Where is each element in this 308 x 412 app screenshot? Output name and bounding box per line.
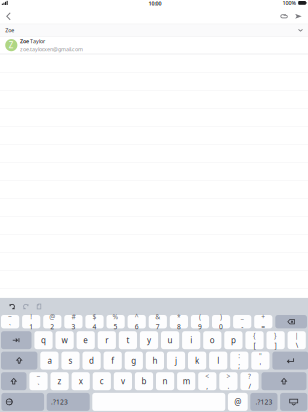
button[interactable]: ~ [29,372,48,390]
staticText: ] [275,341,277,350]
button[interactable]: + [254,315,272,328]
button[interactable]: h [146,352,164,370]
button[interactable]: z [50,372,69,390]
button[interactable]: e [77,331,95,349]
button[interactable]: % [106,315,125,328]
staticText: ` [37,382,39,391]
button[interactable]: Delete [275,315,307,328]
button[interactable]: @ [43,315,61,328]
button[interactable]: : [230,352,248,370]
button[interactable]: Undo [5,303,19,309]
staticText: > [226,372,230,381]
staticText: " [259,351,262,360]
button[interactable]: f [104,352,122,370]
button[interactable]: Hide keyboard [280,393,307,411]
button[interactable]: ? [240,372,259,390]
button[interactable]: Redo [19,303,33,309]
staticText: ^ [135,312,139,321]
button[interactable]: o [203,331,221,349]
button[interactable]: Return [272,352,308,370]
button[interactable]: ^ [128,315,146,328]
button[interactable]: Show recipient fields [293,25,308,36]
button[interactable]: Numbers [47,393,90,411]
staticText: < [205,372,209,381]
button[interactable]: " [251,352,269,370]
button[interactable]: y [140,331,158,349]
button[interactable]: > [219,372,237,390]
staticText: @ [234,397,241,407]
button[interactable]: Z [0,37,308,54]
button[interactable]: Numbers [250,393,277,411]
button[interactable]: v [114,372,132,390]
button[interactable]: s [61,352,80,370]
staticText: ; [238,361,240,370]
staticText: $ [92,312,96,321]
staticText: Zoe [20,38,29,45]
button[interactable]: $ [85,315,104,328]
staticText: , [206,382,208,391]
button[interactable]: j [167,352,185,370]
staticText: r [105,335,108,345]
button[interactable]: Back [0,9,17,23]
staticText: f [111,355,114,366]
staticText: 1 [29,322,33,331]
button[interactable]: # [64,315,82,328]
button[interactable]: g [125,352,143,370]
staticText: g [131,355,136,366]
button[interactable]: _ [233,315,251,328]
staticText: 5 [114,322,118,331]
button[interactable]: ~ [1,315,19,328]
staticText: 9 [198,322,202,331]
staticText: e [83,335,88,345]
staticText: t [126,335,129,345]
button[interactable]: < [198,372,216,390]
button[interactable]: n [156,372,174,390]
button[interactable]: d [82,352,101,370]
button[interactable]: ) [212,315,230,328]
button[interactable]: r [98,331,116,349]
button[interactable]: Paste [33,303,45,309]
button[interactable]: Shift [261,372,306,390]
button[interactable]: m [177,372,195,390]
staticText: i [190,335,192,345]
button[interactable]: Caps Lock [1,352,37,370]
button[interactable]: Tab [1,331,31,349]
button[interactable]: Next keyboard [1,393,44,411]
button[interactable]: Send [291,9,308,23]
button[interactable]: ! [22,315,40,328]
button[interactable]: u [161,331,179,349]
staticText: w [62,335,68,345]
staticText: \ [296,341,298,350]
staticText: j [175,355,177,366]
staticText: | [295,331,299,340]
button[interactable]: { [245,331,264,349]
staticText: ( [199,312,201,321]
button[interactable]: l [209,352,227,370]
button[interactable]: k [188,352,206,370]
staticText: l [217,355,219,366]
button[interactable]: * [170,315,188,328]
button[interactable]: Attach file [277,10,291,23]
button[interactable]: x [72,372,90,390]
button[interactable]: a [40,352,58,370]
button[interactable]: } [266,331,285,349]
button[interactable]: p [224,331,242,349]
staticText: ? [248,372,251,381]
button[interactable]: @ [228,393,248,411]
staticText: Taylor [30,38,45,45]
button[interactable]: b [135,372,153,390]
button[interactable]: & [149,315,167,328]
staticText: s [68,355,72,366]
button[interactable]: ( [191,315,209,328]
button[interactable]: Shift [1,372,26,390]
button[interactable]: q [34,331,53,349]
button[interactable]: w [55,331,74,349]
staticText: q [41,335,46,345]
staticText: z [58,376,62,386]
button[interactable]: c [93,372,111,390]
staticText: 0 [219,322,223,331]
button[interactable]: t [119,331,137,349]
button[interactable]: i [182,331,200,349]
button[interactable]: | [288,331,306,349]
